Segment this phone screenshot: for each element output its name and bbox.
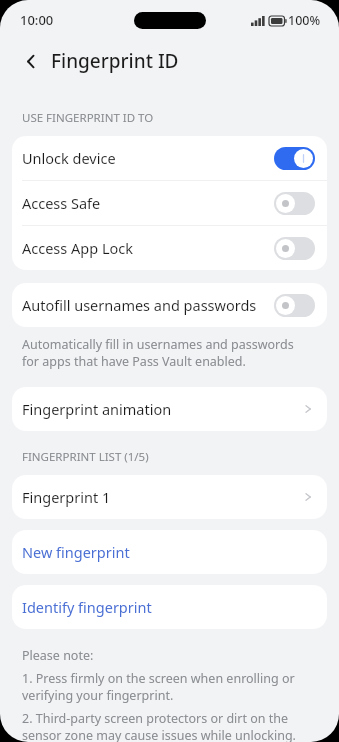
staticText: Please note: xyxy=(22,647,94,664)
staticText: Autofill usernames and passwords xyxy=(22,295,274,315)
staticText: USE FINGERPRINT ID TO xyxy=(22,110,154,126)
staticText: Fingerprint animation xyxy=(22,399,301,419)
staticText: 1. Press firmly on the screen when enrol… xyxy=(22,670,295,704)
staticText: Unlock device xyxy=(22,148,274,168)
staticText: 2. Third-party screen protectors or dirt… xyxy=(22,710,296,742)
button[interactable] xyxy=(274,192,315,215)
button[interactable]: Access App Lock xyxy=(12,226,327,270)
button[interactable]: Fingerprint animation xyxy=(12,387,327,431)
staticText: Fingerprint ID xyxy=(51,48,179,74)
staticText: Fingerprint 1 xyxy=(22,487,301,507)
staticText: New fingerprint xyxy=(22,542,315,562)
button[interactable]: New fingerprint xyxy=(12,530,327,574)
button[interactable]: Identify fingerprint xyxy=(12,585,327,629)
staticText: Automatically fill in usernames and pass… xyxy=(22,336,294,370)
staticText: Access App Lock xyxy=(22,238,274,258)
button[interactable] xyxy=(274,237,315,260)
staticText: Identify fingerprint xyxy=(22,597,315,617)
staticText: Access Safe xyxy=(22,193,274,213)
button[interactable]: Autofill usernames and passwords xyxy=(12,283,327,327)
button[interactable]: Access Safe xyxy=(12,181,327,225)
button[interactable] xyxy=(274,294,315,317)
button[interactable]: Back xyxy=(18,48,44,74)
staticText: 10:00 xyxy=(20,11,54,29)
button[interactable] xyxy=(274,147,315,170)
staticText: FINGERPRINT LIST (1/5) xyxy=(22,449,149,465)
button[interactable]: Fingerprint 1 xyxy=(12,475,327,519)
staticText: 100% xyxy=(288,12,321,29)
button[interactable]: Unlock device xyxy=(12,136,327,180)
